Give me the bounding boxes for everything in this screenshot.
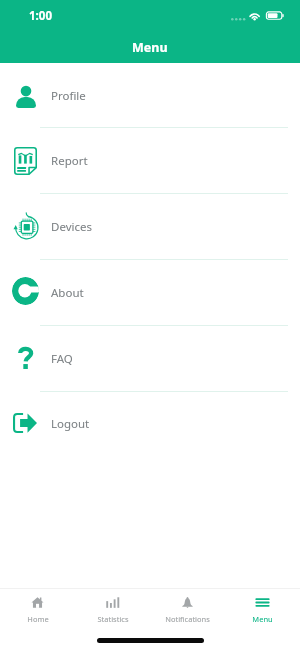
button[interactable]: About	[0, 260, 300, 326]
button[interactable]: Profile	[0, 63, 300, 128]
button[interactable]: FAQ	[0, 326, 300, 392]
staticText: Home	[27, 614, 49, 624]
staticText: Menu	[252, 614, 273, 624]
button[interactable]: Notifications	[150, 589, 225, 624]
staticText: Logout	[51, 416, 90, 432]
button[interactable]: Devices	[0, 194, 300, 260]
button[interactable]: Report	[0, 128, 300, 194]
button[interactable]: Home	[0, 589, 75, 624]
button[interactable]: Menu	[225, 589, 300, 624]
staticText: About	[51, 285, 84, 301]
staticText: FAQ	[51, 351, 73, 367]
staticText: Notifications	[165, 614, 210, 624]
button[interactable]: Logout	[0, 392, 300, 456]
staticText: Statistics	[97, 614, 129, 624]
staticText: Menu	[132, 39, 168, 56]
staticText: 1:00	[29, 8, 52, 24]
staticText: Report	[51, 153, 88, 169]
button[interactable]: Statistics	[75, 589, 150, 624]
staticText: Profile	[51, 88, 86, 104]
staticText: Devices	[51, 219, 92, 235]
